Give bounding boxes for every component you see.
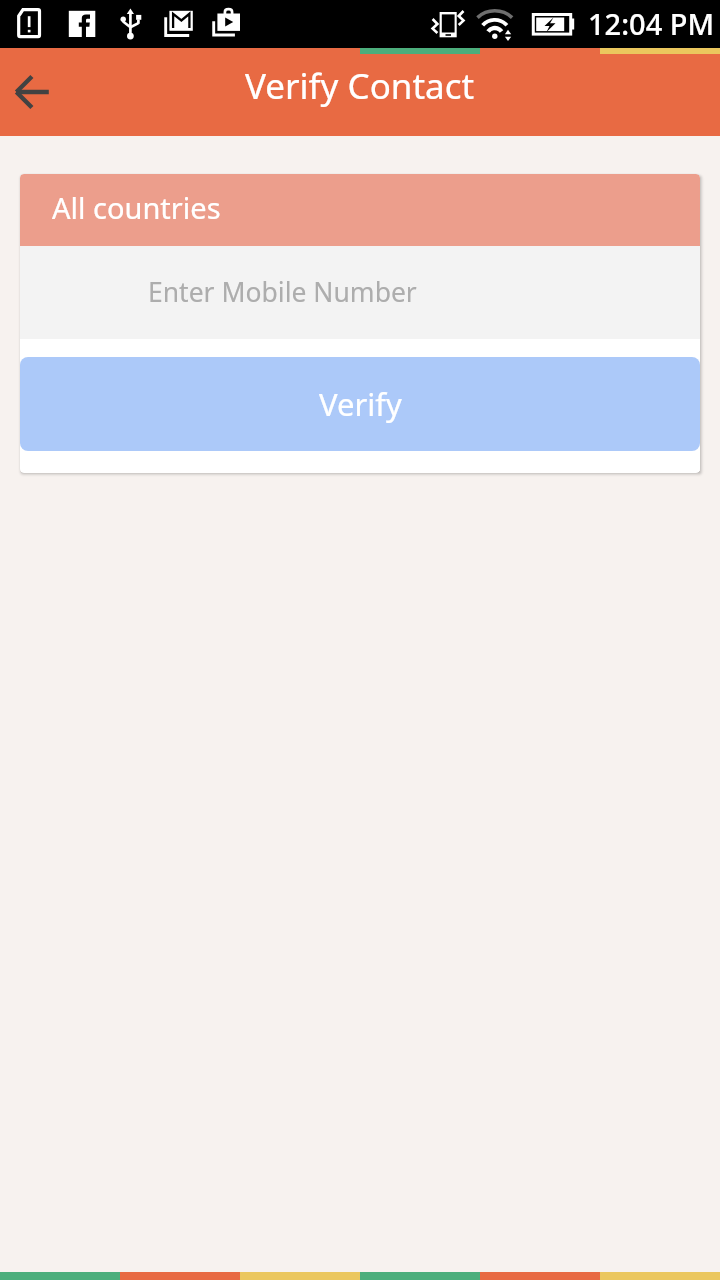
staticText: 12:04 PM — [588, 4, 715, 43]
staticText: Verify — [319, 383, 402, 425]
button[interactable]: Select country — [20, 174, 700, 246]
staticText: Verify Contact — [245, 62, 475, 110]
button[interactable]: Verify — [20, 357, 700, 451]
staticText: Enter Mobile Number — [148, 274, 417, 310]
button[interactable]: Back — [4, 64, 60, 120]
staticText: All countries — [52, 188, 221, 227]
button[interactable]: Mobile number input — [20, 246, 700, 339]
